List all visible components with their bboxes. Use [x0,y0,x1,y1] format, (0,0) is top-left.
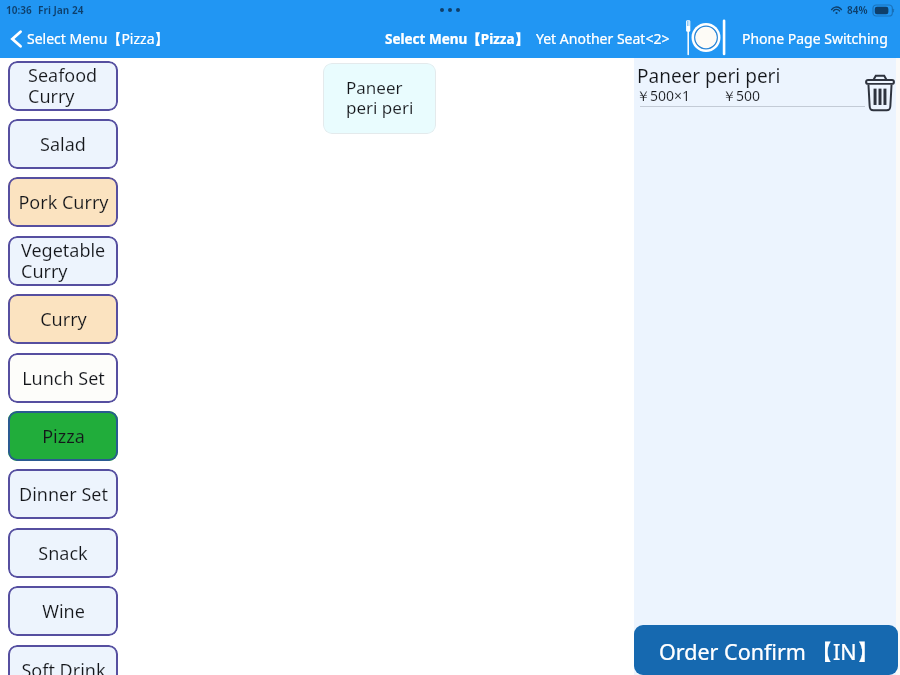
button[interactable]: Salad [8,119,118,169]
button[interactable]: Snack [8,528,118,578]
button[interactable]: Dinner Set [8,469,118,519]
button[interactable]: Paneer peri peri [634,60,896,114]
staticText: Snack [38,541,88,566]
staticText: Wine [42,599,85,624]
staticText: Lunch Set [22,366,105,391]
button[interactable]: Yet Another Seat<2> [536,29,670,48]
button[interactable]: Vegetable Curry [8,236,118,286]
staticText: Pork Curry [18,190,109,215]
button[interactable]: Paneer peri peri [323,63,436,134]
button[interactable]: Pork Curry [8,177,118,227]
button[interactable]: Curry [8,294,118,344]
button[interactable]: Select Menu【Pizza】 [0,29,177,48]
button[interactable]: Delete [865,74,895,112]
staticText: Salad [40,132,86,157]
button[interactable]: Wine [8,586,118,636]
staticText: Fri Jan 24 [38,3,84,17]
staticText: Order Confirm 【IN】 [659,637,879,666]
button[interactable]: Pizza [8,411,118,461]
staticText: 84% [847,3,868,17]
staticText: Vegetable Curry [21,238,106,284]
button[interactable]: Restaurant [684,19,726,58]
button[interactable]: Soft Drink [8,645,118,675]
staticText: Dinner Set [19,482,108,507]
button[interactable]: Seafood Curry [8,61,118,111]
staticText: ￥500×1 [636,86,691,105]
staticText: Paneer peri peri [346,76,414,119]
staticText: Curry [40,307,87,332]
staticText: Paneer peri peri [637,63,781,89]
staticText: ￥500 [722,86,761,105]
staticText: Seafood Curry [28,63,98,109]
staticText: Select Menu【Pizza】 [27,29,169,48]
staticText: Pizza [42,424,85,449]
staticText: Select Menu【Pizza】 [385,30,529,48]
button[interactable]: Phone Page Switching [742,29,888,48]
staticText: 10:36 [6,3,32,17]
button[interactable]: Lunch Set [8,353,118,403]
staticText: Soft Drink [21,658,106,675]
button[interactable]: Order Confirm 【IN】 [634,625,898,675]
